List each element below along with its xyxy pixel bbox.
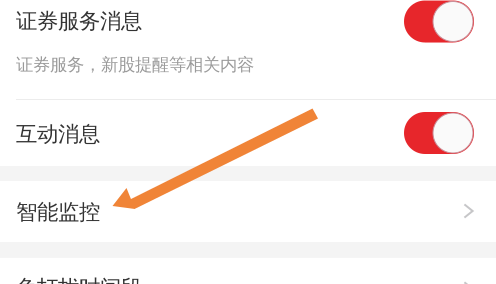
button[interactable]: 互动消息 [0,100,496,166]
staticText: 证券服务消息 [16,8,142,34]
staticText: 互动消息 [16,121,100,147]
button[interactable]: 智能监控 [0,181,496,242]
staticText: 智能监控 [16,199,100,225]
staticText: 免打扰时间段 [16,275,142,284]
staticText: 证券服务，新股提醒等相关内容 [16,54,254,75]
button[interactable]: 免打扰时间段 [0,258,496,284]
button[interactable]: 证券服务消息 [0,0,496,99]
